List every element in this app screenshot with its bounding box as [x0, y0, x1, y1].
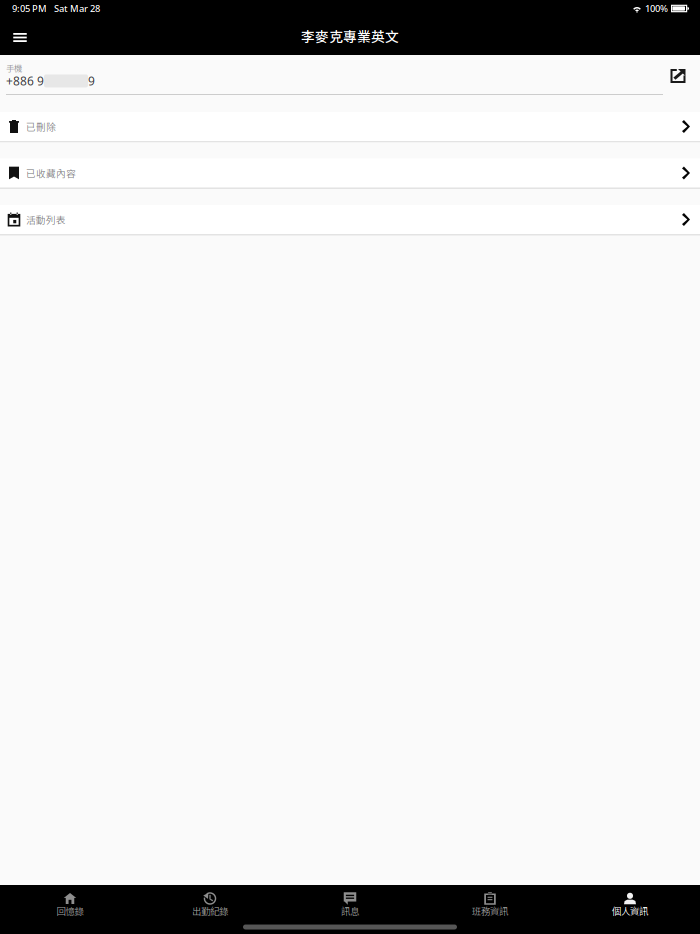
button[interactable]: 班務資訊	[420, 885, 560, 924]
staticText: 已收藏內容	[26, 166, 76, 180]
staticText: +886 9	[6, 73, 44, 89]
staticText: 已刪除	[26, 119, 56, 133]
staticText: 9	[88, 73, 95, 89]
staticText: 個人資訊	[612, 904, 648, 918]
button[interactable]: Menu	[3, 20, 37, 55]
button[interactable]: 訊息	[280, 885, 420, 924]
staticText: 班務資訊	[472, 904, 508, 918]
staticText: Sat Mar 28	[54, 2, 100, 15]
staticText: 100%	[645, 2, 668, 15]
staticText: 手機	[6, 62, 22, 74]
button[interactable]: Open externally	[663, 63, 693, 89]
staticText: 9:05 PM	[12, 2, 47, 15]
button[interactable]: 活動列表	[0, 205, 700, 234]
button[interactable]: 出勤紀錄	[140, 885, 280, 924]
staticText: 訊息	[341, 904, 359, 918]
staticText: 李麥克專業英文	[301, 26, 399, 46]
button[interactable]: 回憶錄	[0, 885, 140, 924]
button[interactable]: 個人資訊	[560, 885, 700, 924]
staticText: 活動列表	[26, 212, 66, 226]
button[interactable]: 已刪除	[0, 112, 700, 141]
button[interactable]: 已收藏內容	[0, 158, 700, 187]
staticText: 出勤紀錄	[192, 904, 228, 918]
staticText: 回憶錄	[56, 904, 83, 918]
